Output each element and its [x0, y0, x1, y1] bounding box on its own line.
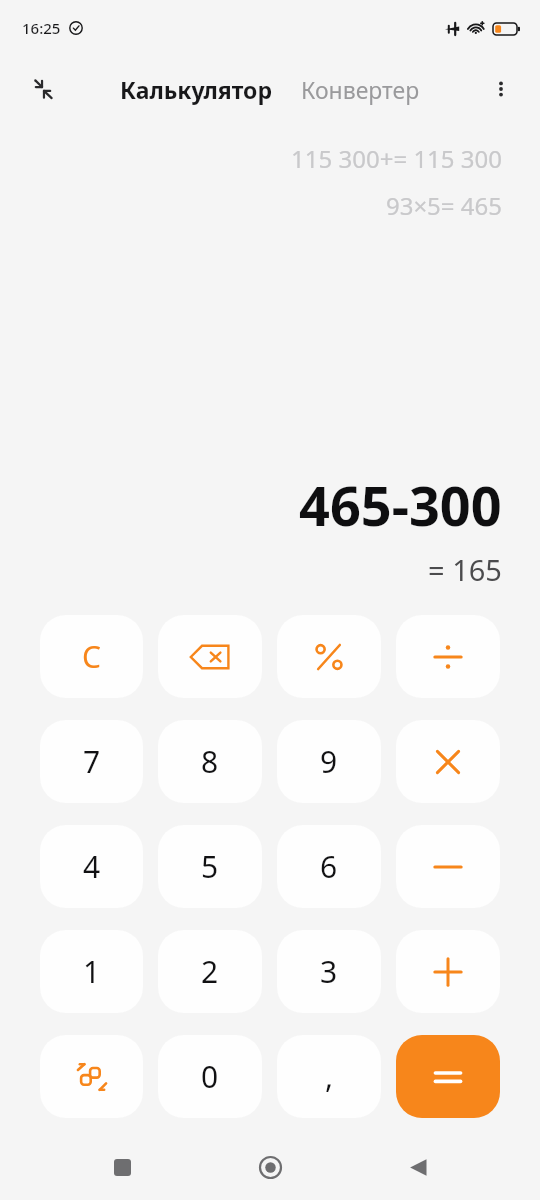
- button[interactable]: Multiply: [396, 720, 500, 803]
- button[interactable]: More options: [480, 68, 522, 110]
- staticText: 465-300: [299, 468, 502, 542]
- button[interactable]: 3: [277, 930, 381, 1013]
- button[interactable]: 1: [40, 930, 143, 1013]
- staticText: 5: [201, 846, 219, 887]
- button[interactable]: Back: [392, 1141, 444, 1193]
- staticText: 6: [320, 846, 338, 887]
- button[interactable]: Convert: [40, 1035, 143, 1118]
- button[interactable]: C: [40, 615, 143, 698]
- button[interactable]: Percent: [277, 615, 381, 698]
- staticText: Калькулятор: [120, 74, 273, 105]
- button[interactable]: 2: [158, 930, 262, 1013]
- staticText: Конвертер: [301, 74, 420, 105]
- staticText: 7: [83, 741, 101, 782]
- staticText: 0: [201, 1056, 219, 1097]
- staticText: 9: [320, 741, 338, 782]
- staticText: ,: [325, 1056, 334, 1097]
- button[interactable]: 7: [40, 720, 143, 803]
- button[interactable]: 5: [158, 825, 262, 908]
- staticText: 16:25: [22, 18, 61, 38]
- staticText: 8: [201, 741, 219, 782]
- button[interactable]: Minus: [396, 825, 500, 908]
- staticText: 2: [201, 951, 219, 992]
- staticText: 115 300+= 115 300: [291, 142, 502, 175]
- staticText: = 165: [428, 550, 502, 589]
- button[interactable]: 9: [277, 720, 381, 803]
- staticText: 3: [320, 951, 338, 992]
- button[interactable]: Divide: [396, 615, 500, 698]
- button[interactable]: 4: [40, 825, 143, 908]
- button[interactable]: Plus: [396, 930, 500, 1013]
- staticText: 93×5= 465: [385, 189, 502, 222]
- button[interactable]: Recents: [96, 1141, 148, 1193]
- button[interactable]: Конвертер: [297, 68, 424, 111]
- button[interactable]: 8: [158, 720, 262, 803]
- button[interactable]: 6: [277, 825, 381, 908]
- staticText: 4: [83, 846, 101, 887]
- staticText: 1: [83, 951, 101, 992]
- button[interactable]: Калькулятор: [116, 68, 277, 111]
- button[interactable]: Collapse: [22, 68, 64, 110]
- button[interactable]: Equals: [396, 1035, 500, 1118]
- button[interactable]: ,: [277, 1035, 381, 1118]
- staticText: C: [82, 636, 101, 677]
- button[interactable]: Delete: [158, 615, 262, 698]
- button[interactable]: Home: [244, 1141, 296, 1193]
- button[interactable]: 0: [158, 1035, 262, 1118]
